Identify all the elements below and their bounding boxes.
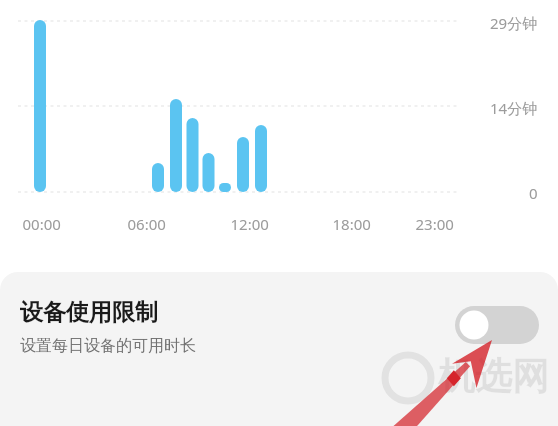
- button[interactable]: [0, 272, 558, 426]
- button[interactable]: 设备使用限制开关: [455, 306, 539, 344]
